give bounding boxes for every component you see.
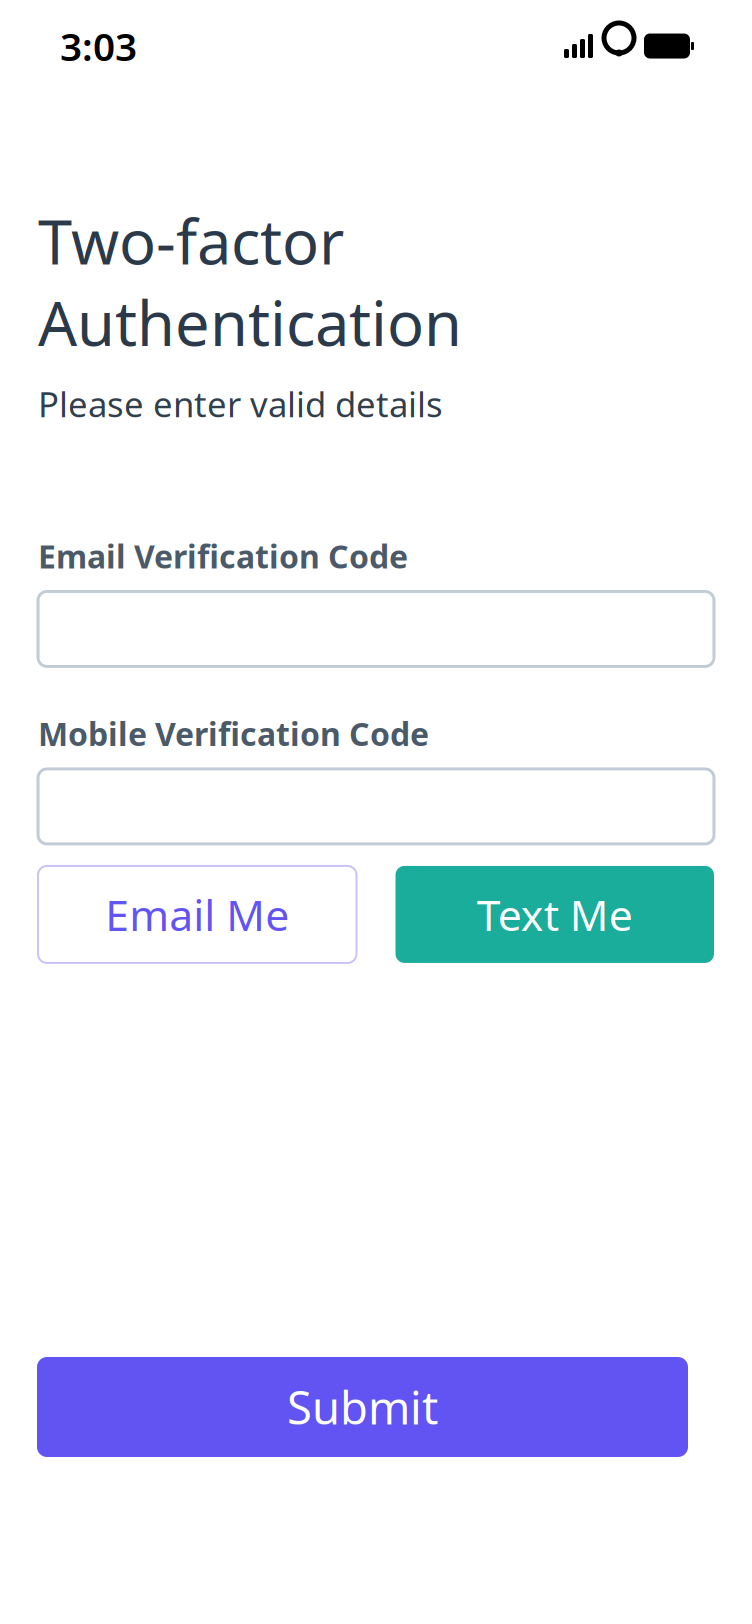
staticText: Text Me	[477, 886, 633, 943]
button[interactable]: Email Me	[38, 866, 356, 963]
button[interactable]: Submit	[37, 1357, 688, 1457]
staticText: Email Verification Code	[38, 535, 408, 577]
staticText: Please enter valid details	[38, 381, 443, 427]
staticText: Two-factor Authentication	[38, 200, 462, 363]
button[interactable]: Text Me	[395, 866, 714, 963]
staticText: Submit	[287, 1377, 438, 1437]
staticText: 3:03	[60, 20, 137, 72]
staticText: Mobile Verification Code	[38, 712, 429, 755]
staticText: Email Me	[105, 886, 289, 943]
